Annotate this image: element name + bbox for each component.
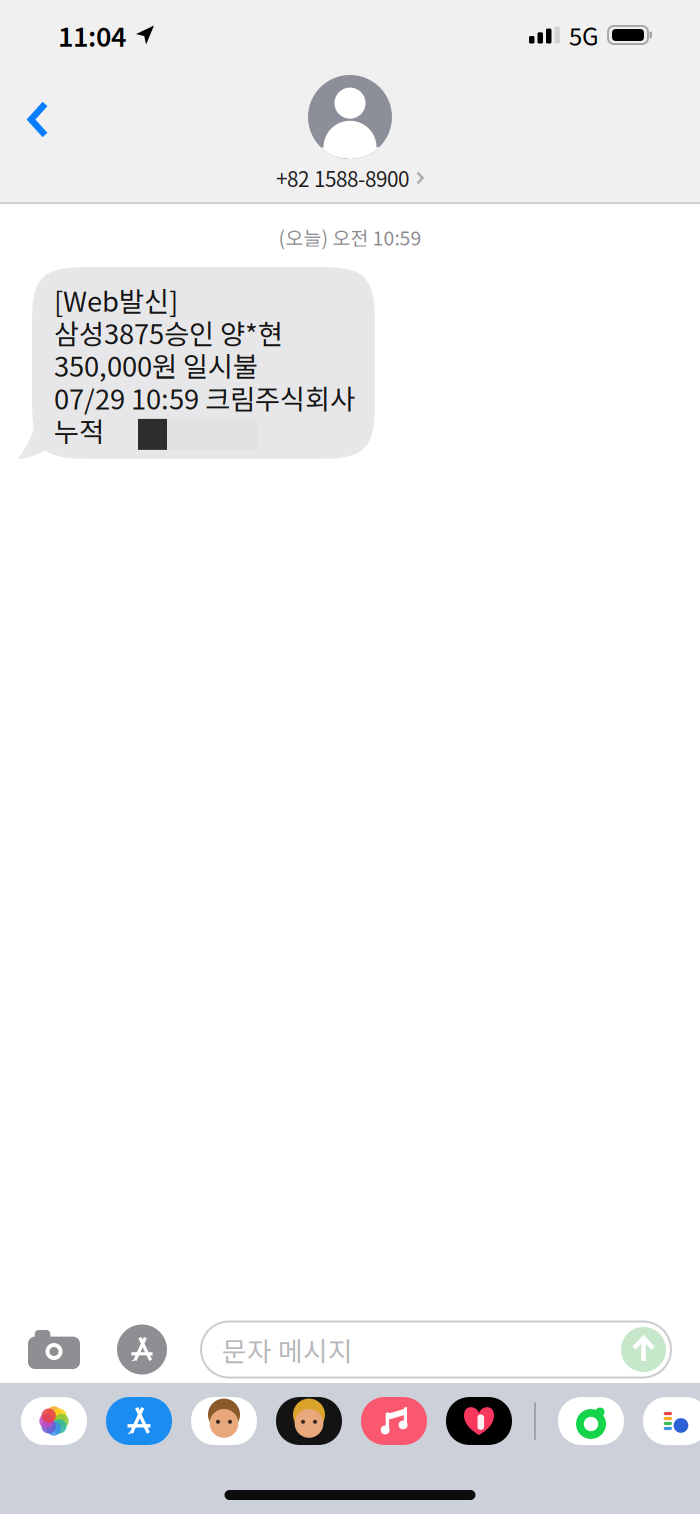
button[interactable]: Send xyxy=(621,1327,666,1372)
staticText: 11:04 xyxy=(58,16,126,54)
button[interactable]: App xyxy=(446,1397,512,1445)
staticText: 5G xyxy=(569,18,599,52)
button[interactable]: App xyxy=(361,1397,427,1445)
button[interactable]: Back xyxy=(0,79,82,160)
button[interactable]: Apps xyxy=(108,1320,176,1378)
button[interactable]: App xyxy=(191,1397,257,1445)
staticText: [Web발신] xyxy=(54,280,178,320)
button[interactable]: Camera xyxy=(20,1322,88,1377)
staticText: 문자 메시지 xyxy=(222,1330,353,1369)
button[interactable]: App xyxy=(276,1397,342,1445)
staticText: 삼성3875승인 양*현 xyxy=(54,313,283,352)
button[interactable]: App xyxy=(558,1397,624,1445)
staticText: +82 1588-8900 xyxy=(276,163,409,193)
button[interactable]: App xyxy=(106,1397,172,1445)
staticText: 07/29 10:59 크림주식회사 xyxy=(54,378,355,417)
staticText: 누적 xyxy=(54,410,104,450)
staticText: 350,000원 일시불 xyxy=(54,345,258,385)
button[interactable]: App xyxy=(21,1397,87,1445)
staticText: (오늘) 오전 10:59 xyxy=(278,223,421,251)
button[interactable]: App xyxy=(643,1397,700,1445)
